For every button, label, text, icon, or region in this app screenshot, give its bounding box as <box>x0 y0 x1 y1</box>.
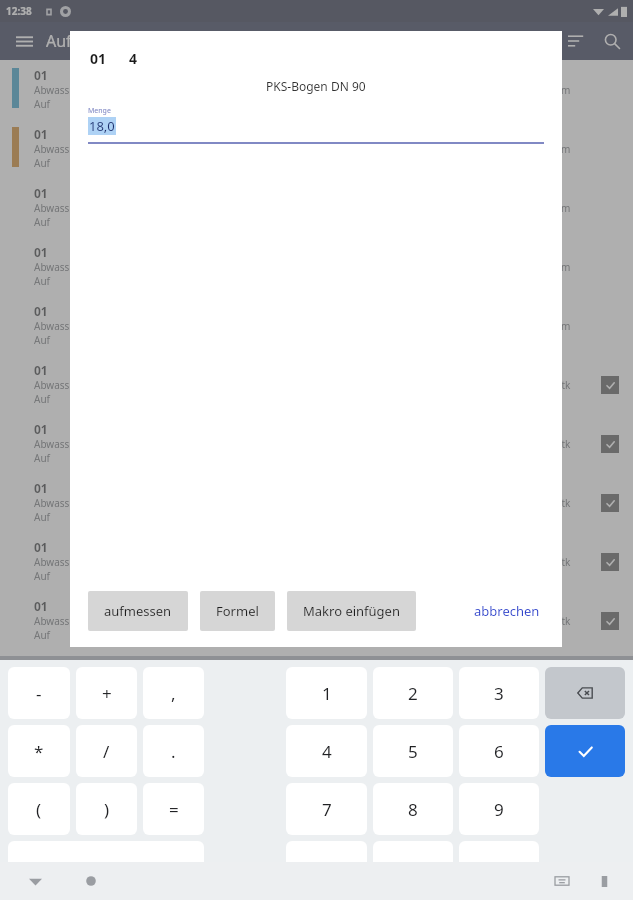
button[interactable]: = <box>143 783 204 835</box>
staticText: Stk <box>556 378 571 392</box>
button[interactable]: Search <box>595 24 629 58</box>
button[interactable]: / <box>76 725 137 777</box>
button[interactable]: Sort <box>559 24 593 58</box>
button[interactable]: 9 <box>459 783 539 835</box>
staticText: m <box>561 319 571 333</box>
staticText: * <box>322 856 332 879</box>
staticText: PKS-Bogen DN 90 <box>266 78 366 94</box>
staticText: Menge <box>88 106 111 116</box>
button[interactable]: Enter <box>545 725 625 777</box>
staticText: Abwasser <box>34 614 80 628</box>
staticText: 01 <box>90 49 107 68</box>
button[interactable]: * <box>286 841 367 893</box>
staticText: Makro einfügen <box>303 602 400 620</box>
staticText: aufmessen <box>104 602 172 620</box>
button[interactable]: aufmessen <box>88 591 188 631</box>
staticText: # <box>494 856 505 879</box>
button[interactable]: 01 <box>0 178 633 237</box>
button[interactable]: 0 <box>373 841 453 893</box>
staticText: 4 <box>322 740 332 763</box>
button[interactable]: 01 <box>0 591 633 650</box>
button[interactable]: ␣ <box>8 841 204 893</box>
button[interactable]: . <box>143 725 204 777</box>
staticText: Abwasser <box>34 555 80 569</box>
button[interactable]: 2 <box>373 667 453 719</box>
staticText: 7 <box>322 798 332 821</box>
staticText: Auf <box>34 156 51 170</box>
button[interactable]: 01 <box>0 296 633 355</box>
staticText: 01 <box>34 362 48 378</box>
button[interactable]: 5 <box>373 725 453 777</box>
staticText: 4 <box>129 49 138 68</box>
staticText: Auf <box>34 451 51 465</box>
button[interactable]: , <box>143 667 204 719</box>
staticText: Auf <box>34 510 51 524</box>
button[interactable]: 7 <box>286 783 367 835</box>
button[interactable]: ( <box>8 783 70 835</box>
staticText: . <box>171 740 176 763</box>
button[interactable]: 01 <box>0 119 633 178</box>
button[interactable]: Back <box>18 864 52 898</box>
staticText: m <box>561 142 571 156</box>
button[interactable]: 4 <box>286 725 367 777</box>
button[interactable]: # <box>459 841 539 893</box>
button[interactable]: 01 <box>0 473 633 532</box>
button[interactable]: 01 <box>0 60 633 119</box>
button[interactable]: Hide keyboard <box>545 864 579 898</box>
staticText: 01 <box>34 598 48 614</box>
staticText: m <box>561 83 571 97</box>
staticText: ) <box>104 798 110 821</box>
button[interactable]: Recents <box>587 864 621 898</box>
button[interactable]: Menu <box>8 25 40 57</box>
staticText: Formel <box>216 602 259 620</box>
staticText: 01 <box>34 539 48 555</box>
staticText: 01 <box>34 244 48 260</box>
button[interactable]: 01 <box>0 237 633 296</box>
staticText: 01 <box>34 185 48 201</box>
staticText: Auf <box>34 628 51 642</box>
staticText: 18,0 <box>89 117 115 135</box>
button[interactable]: + <box>76 667 137 719</box>
staticText: = <box>169 798 179 821</box>
button[interactable]: Makro einfügen <box>287 591 416 631</box>
button[interactable]: Home <box>74 864 108 898</box>
button[interactable]: 8 <box>373 783 453 835</box>
staticText: 9 <box>494 798 504 821</box>
staticText: Abwasser <box>34 378 80 392</box>
staticText: abbrechen <box>474 602 540 620</box>
button[interactable]: 01 <box>0 414 633 473</box>
staticText: 01 <box>34 303 48 319</box>
staticText: Auf <box>34 333 51 347</box>
staticText: 01 <box>34 480 48 496</box>
staticText: Abwasser <box>34 260 80 274</box>
staticText: Auf <box>34 215 51 229</box>
button[interactable]: 01 <box>0 532 633 591</box>
staticText: 6 <box>494 740 504 763</box>
button[interactable]: abbrechen <box>466 592 548 630</box>
staticText: Abwasser <box>34 83 80 97</box>
staticText: Abwasser <box>34 319 80 333</box>
button[interactable]: * <box>8 725 70 777</box>
button[interactable]: 01 <box>0 355 633 414</box>
staticText: Abwasser <box>34 496 80 510</box>
button[interactable]: 6 <box>459 725 539 777</box>
staticText: 8 <box>408 798 418 821</box>
staticText: Stk <box>556 437 571 451</box>
staticText: Auftrag A-100007 <box>46 30 177 52</box>
button[interactable]: - <box>8 667 70 719</box>
staticText: Auf <box>34 569 51 583</box>
staticText: * <box>34 740 44 763</box>
button[interactable]: 3 <box>459 667 539 719</box>
staticText: 2 <box>408 682 418 705</box>
staticText: 3 <box>494 682 504 705</box>
staticText: - <box>36 682 42 705</box>
button[interactable]: Formel <box>200 591 275 631</box>
staticText: , <box>171 682 176 705</box>
staticText: Stk <box>556 555 571 569</box>
button[interactable]: ) <box>76 783 137 835</box>
button[interactable]: 1 <box>286 667 367 719</box>
staticText: 01 <box>34 126 48 142</box>
button[interactable]: Backspace <box>545 667 625 719</box>
staticText: 01 <box>34 421 48 437</box>
staticText: m <box>561 201 571 215</box>
